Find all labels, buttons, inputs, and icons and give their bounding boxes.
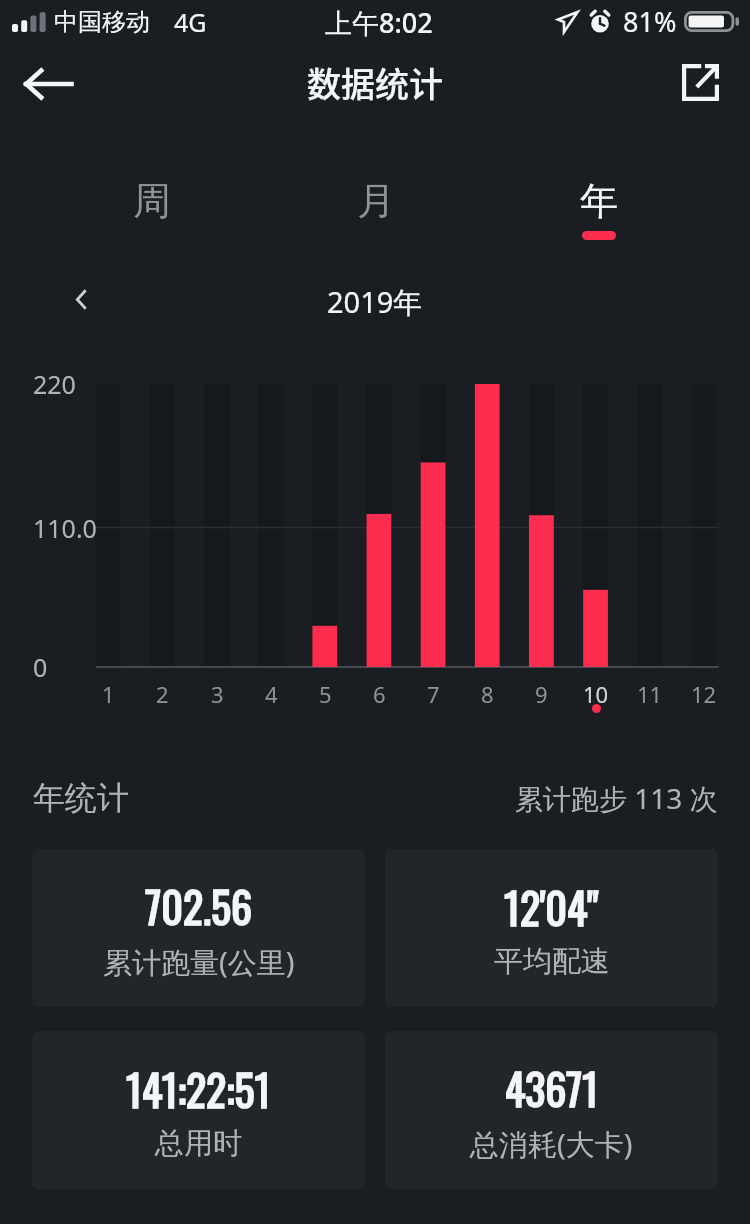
staticText: 1 (102, 679, 115, 709)
staticText: 4 (265, 679, 278, 709)
staticText: 81% (623, 3, 677, 40)
staticText: 2 (156, 679, 169, 709)
staticText: 周 (133, 177, 171, 225)
button[interactable]: Previous year (56, 274, 106, 324)
staticText: 43671 (505, 1057, 599, 1119)
staticText: 141:22:51 (126, 1058, 271, 1120)
staticText: 220 (33, 367, 76, 401)
staticText: 702.56 (145, 875, 253, 937)
button[interactable]: Share (664, 46, 736, 118)
button[interactable]: 年 (487, 171, 710, 281)
staticText: 7 (427, 679, 440, 709)
staticText: 中国移动 (54, 7, 150, 37)
staticText: 6 (373, 679, 386, 709)
staticText: 上午8:02 (325, 4, 433, 41)
button[interactable]: 12'04" (385, 849, 718, 1007)
staticText: 平均配速 (494, 943, 610, 980)
staticText: 累计跑量(公里) (103, 942, 295, 982)
staticText: 2019年 (327, 282, 423, 322)
button[interactable]: 141:22:51 (32, 1031, 365, 1189)
button[interactable]: 43671 (385, 1031, 718, 1189)
button[interactable]: 702.56 (32, 849, 365, 1007)
staticText: 年统计 (33, 778, 129, 818)
staticText: 总用时 (155, 1125, 242, 1162)
staticText: 总消耗(大卡) (470, 1124, 633, 1164)
staticText: 月 (357, 177, 395, 225)
staticText: 累计跑步 113 次 (515, 779, 718, 817)
staticText: 5 (319, 679, 332, 709)
staticText: 4G (174, 5, 207, 39)
staticText: 0 (33, 650, 48, 684)
staticText: 12 (691, 679, 717, 709)
staticText: 110.0 (33, 511, 97, 545)
staticText: 12'04" (504, 876, 599, 938)
button[interactable]: 月 (264, 171, 487, 281)
staticText: 9 (535, 679, 548, 709)
staticText: 8 (481, 679, 494, 709)
staticText: 数据统计 (307, 58, 443, 107)
button[interactable]: 周 (40, 171, 264, 281)
staticText: 年 (580, 177, 618, 225)
staticText: 10 (583, 679, 609, 709)
staticText: 3 (211, 679, 224, 709)
button[interactable]: Back (8, 44, 88, 124)
staticText: 11 (637, 679, 663, 709)
